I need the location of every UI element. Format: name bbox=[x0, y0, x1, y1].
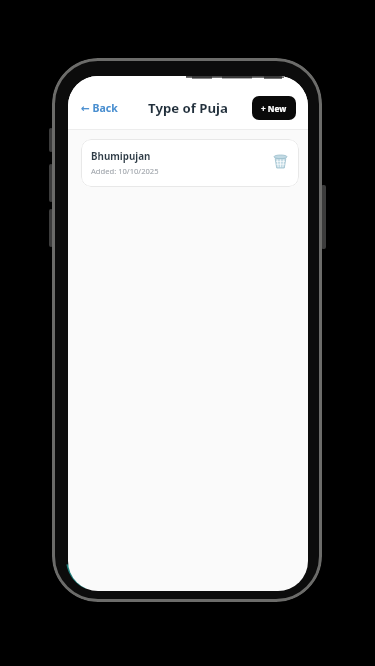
staticText: Type of Puja bbox=[68, 99, 308, 117]
button[interactable]: Bhumipujan bbox=[81, 139, 299, 187]
staticText: ← Back bbox=[81, 101, 118, 115]
staticText: Added: 10/10/2025 bbox=[91, 166, 159, 176]
button[interactable] bbox=[273, 154, 288, 169]
button[interactable]: + New bbox=[252, 96, 296, 120]
staticText: + New bbox=[261, 103, 287, 114]
staticText: Bhumipujan bbox=[91, 150, 151, 163]
button[interactable]: ← Back bbox=[78, 98, 121, 118]
